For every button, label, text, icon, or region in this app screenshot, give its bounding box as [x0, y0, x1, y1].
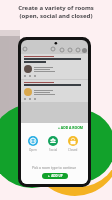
button[interactable]: + ADD A ROOM [58, 125, 84, 130]
button[interactable]: Profile [82, 48, 87, 53]
staticText: Social [49, 148, 58, 152]
staticText: Open [29, 148, 37, 152]
button[interactable]: Notifications [59, 47, 65, 53]
staticText: Create a variety of rooms (open, social … [0, 4, 112, 20]
button[interactable]: More [75, 47, 81, 53]
staticText: Closed [68, 148, 78, 152]
staticText: + ADD A ROOM [58, 125, 84, 130]
button[interactable]: + ADD UP [42, 173, 68, 179]
button[interactable]: Menu [22, 46, 28, 52]
staticText: Pick a room type to continue [32, 165, 77, 169]
button[interactable]: Search [50, 46, 56, 52]
button[interactable]: Social [48, 136, 58, 152]
button[interactable]: Open [28, 136, 38, 152]
staticText: + ADD UP [48, 174, 63, 178]
button[interactable]: Chat [67, 47, 73, 53]
button[interactable]: Closed [68, 136, 78, 152]
